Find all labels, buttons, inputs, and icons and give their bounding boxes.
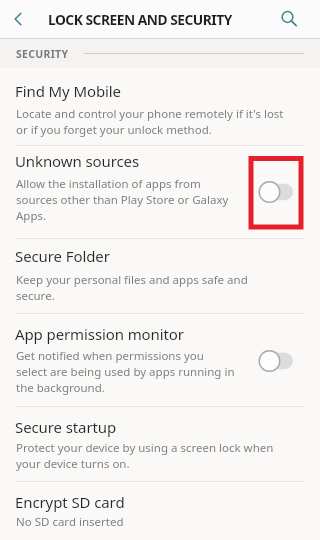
staticText: Get notified when permissions you select… bbox=[16, 348, 256, 396]
staticText: App permission monitor bbox=[15, 324, 184, 344]
button[interactable] bbox=[0, 482, 320, 540]
button[interactable] bbox=[0, 69, 320, 145]
button[interactable] bbox=[0, 146, 320, 237]
staticText: Locate and control your phone remotely i… bbox=[16, 106, 316, 138]
staticText: Encrypt SD card bbox=[15, 492, 125, 512]
button[interactable] bbox=[272, 2, 306, 36]
button[interactable] bbox=[0, 239, 320, 313]
button[interactable] bbox=[0, 314, 320, 406]
button[interactable] bbox=[0, 407, 320, 481]
staticText: Protect your device by using a screen lo… bbox=[16, 440, 316, 472]
staticText: Allow the installation of apps from sour… bbox=[16, 176, 252, 224]
staticText: Keep your personal files and apps safe a… bbox=[16, 272, 316, 304]
staticText: Find My Mobile bbox=[15, 81, 121, 101]
staticText: Secure startup bbox=[15, 417, 117, 437]
staticText: LOCK SCREEN AND SECURITY bbox=[48, 10, 232, 29]
staticText: SECURITY bbox=[16, 47, 69, 61]
button[interactable] bbox=[2, 2, 34, 36]
staticText: Secure Folder bbox=[15, 246, 110, 266]
staticText: Unknown sources bbox=[15, 151, 140, 171]
staticText: No SD card inserted bbox=[16, 514, 316, 530]
